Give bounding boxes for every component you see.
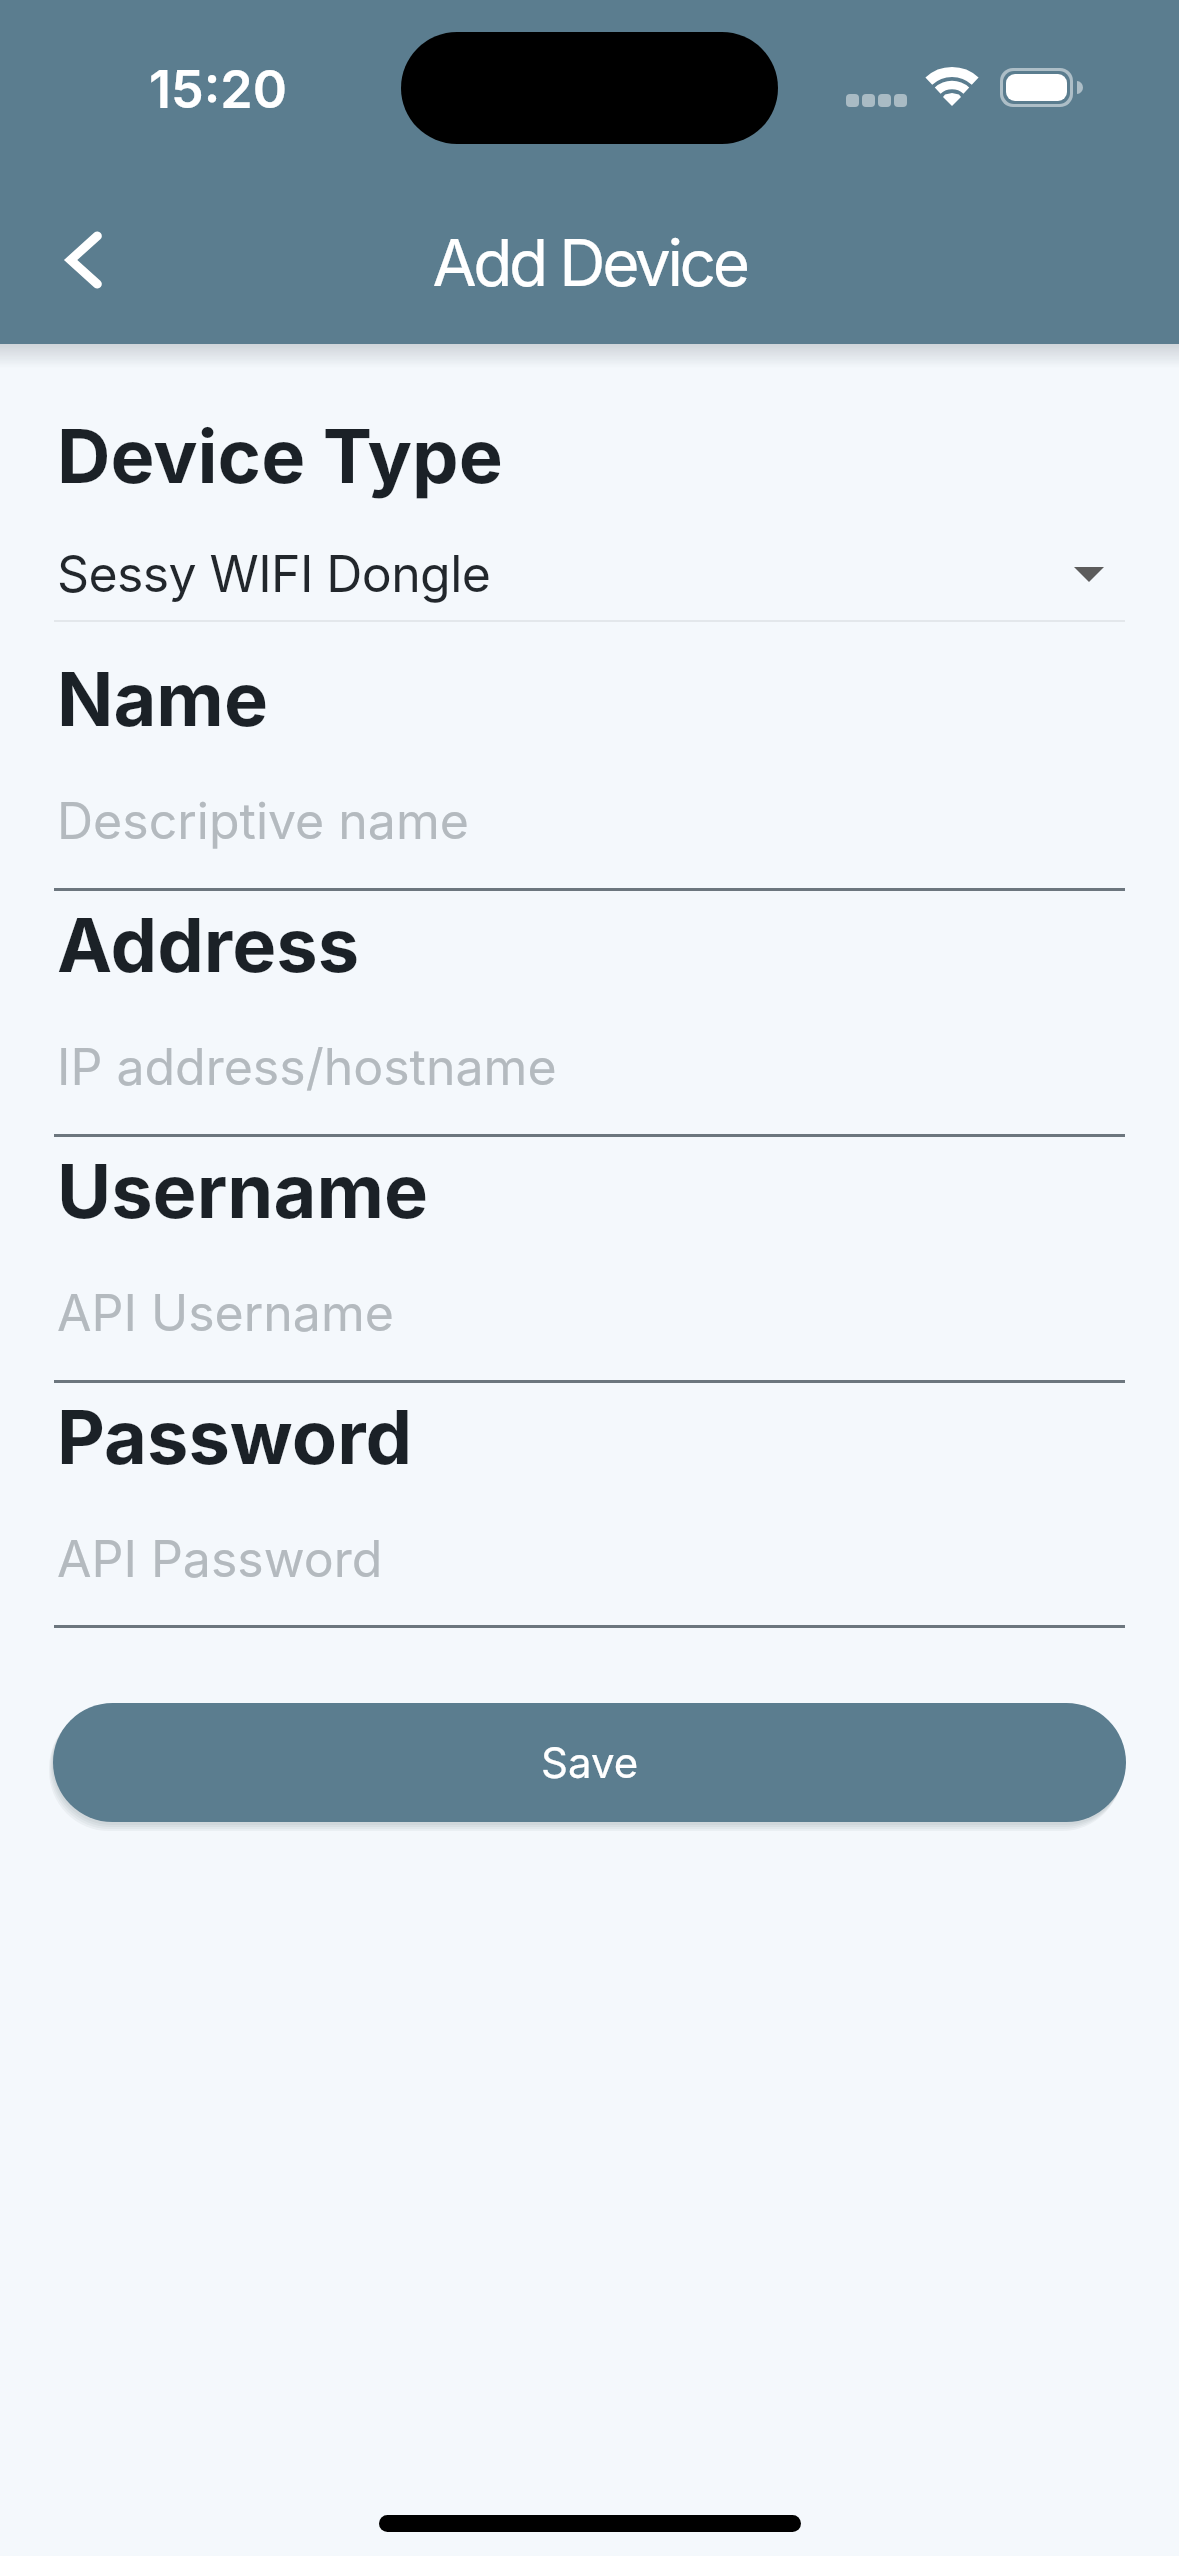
staticText: Device Type [57, 411, 503, 501]
staticText: Password [57, 1392, 413, 1482]
other: Wi-Fi [925, 65, 979, 109]
staticText: Add Device [432, 224, 747, 301]
staticText: Username [57, 1146, 429, 1236]
staticText: Address [57, 900, 360, 990]
other: Battery full [1000, 68, 1073, 107]
button[interactable]: API Username [0, 1267, 1179, 1381]
staticText: Save [541, 1737, 639, 1788]
button[interactable]: Back [28, 204, 140, 316]
button[interactable]: API Password [0, 1513, 1179, 1627]
staticText: IP address/hostname [57, 1037, 557, 1097]
staticText: Descriptive name [57, 791, 469, 851]
button[interactable]: Descriptive name [0, 775, 1179, 889]
other: Cellular signal [846, 94, 904, 107]
staticText: API Password [57, 1529, 383, 1589]
button[interactable]: IP address/hostname [0, 1021, 1179, 1135]
staticText: Name [57, 654, 268, 744]
button[interactable]: Save [53, 1703, 1126, 1822]
button[interactable]: Sessy WIFI Dongle [0, 528, 1179, 620]
staticText: Sessy WIFI Dongle [57, 544, 491, 604]
staticText: 15:20 [149, 58, 287, 121]
staticText: API Username [57, 1283, 394, 1343]
